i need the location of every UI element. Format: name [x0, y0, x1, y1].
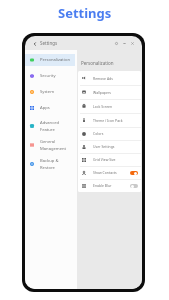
button[interactable]: General Management	[25, 135, 77, 154]
staticText: User Settings	[93, 144, 115, 149]
button[interactable]: Colors	[78, 127, 141, 140]
staticText: Remove Ads	[93, 76, 113, 81]
button[interactable]: Enable Blur	[78, 179, 141, 192]
button[interactable]: Close window	[129, 40, 135, 46]
staticText: Colors	[93, 131, 104, 136]
button[interactable]: Wallpapers	[78, 85, 141, 99]
button[interactable]: Maximize window	[121, 40, 127, 46]
staticText: Advanced Feature	[40, 120, 60, 132]
button[interactable]: Personalization	[25, 52, 77, 68]
staticText: Lock Screen	[93, 104, 113, 109]
button[interactable]: Security	[25, 68, 77, 84]
staticText: Wallpapers	[93, 90, 111, 95]
button[interactable]: Remove Ads	[78, 71, 141, 85]
staticText: Apps	[40, 105, 50, 111]
staticText: Enable Blur	[93, 183, 112, 188]
button[interactable]: Backup & Restore	[25, 154, 77, 173]
staticText: Show Contacts	[93, 170, 117, 175]
staticText: Theme / Icon Pack	[93, 118, 123, 123]
staticText: Settings	[40, 40, 58, 46]
button[interactable]: System	[25, 84, 77, 100]
button[interactable]: Toggle on	[130, 171, 138, 175]
staticText: Security	[40, 73, 56, 79]
staticText: System	[40, 89, 55, 95]
button[interactable]: Show Contacts	[78, 166, 141, 179]
button[interactable]: Apps	[25, 100, 77, 116]
staticText: Settings	[58, 4, 112, 22]
staticText: Personalization	[40, 57, 70, 63]
button[interactable]: Theme / Icon Pack	[78, 113, 141, 127]
staticText: Backup & Restore	[40, 158, 59, 170]
staticText: Personalization	[81, 60, 114, 66]
button[interactable]: Grid View Size	[78, 153, 141, 166]
button[interactable]: Back	[30, 39, 39, 48]
staticText: General Management	[40, 139, 67, 151]
button[interactable]: Minimize window	[113, 40, 119, 46]
button[interactable]: User Settings	[78, 140, 141, 153]
button[interactable]: Advanced Feature	[25, 116, 77, 135]
staticText: Grid View Size	[93, 157, 116, 162]
button[interactable]: Lock Screen	[78, 99, 141, 113]
button[interactable]: Toggle off	[130, 184, 138, 188]
